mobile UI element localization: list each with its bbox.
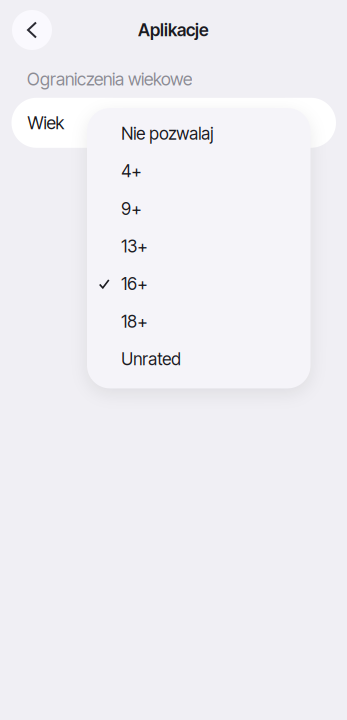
staticText: Unrated [121,349,181,369]
staticText: Nie pozwalaj [121,123,213,144]
staticText: 18+ [121,311,147,332]
staticText: Wiek [27,112,64,133]
staticText: 9+ [121,198,141,219]
button[interactable]: Unrated [87,340,310,378]
button[interactable]: 16+ [87,265,310,303]
button[interactable]: Wiek [11,98,336,148]
staticText: 16+ [121,274,147,294]
staticText: Ograniczenia wiekowe [27,68,192,90]
staticText: Aplikacje [138,19,209,40]
button[interactable]: 18+ [87,303,310,340]
button[interactable]: 13+ [87,227,310,265]
button[interactable]: Back [12,10,52,50]
staticText: 4+ [121,161,141,181]
button[interactable]: 4+ [87,152,310,190]
staticText: 13+ [121,236,147,257]
button[interactable]: 9+ [87,190,310,227]
button[interactable]: Nie pozwalaj [87,115,310,152]
